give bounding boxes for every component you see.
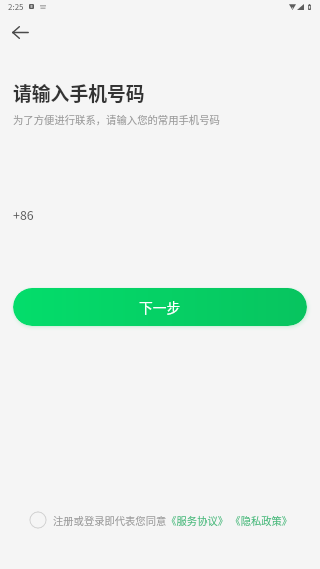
button[interactable]: 下一步 — [13, 288, 307, 326]
staticText: 注册或登录即代表您同意《服务协议》 《隐私政策》 — [53, 513, 293, 528]
staticText: 下一步 — [139, 297, 181, 317]
staticText: 为了方便进行联系，请输入您的常用手机号码 — [13, 112, 220, 127]
staticText: 请输入手机号码 — [13, 79, 145, 106]
button[interactable]: 同意协议 — [29, 511, 47, 529]
button[interactable]: 返回 — [6, 18, 34, 46]
staticText: 2:25 — [8, 1, 24, 13]
staticText: +86 — [13, 206, 34, 224]
